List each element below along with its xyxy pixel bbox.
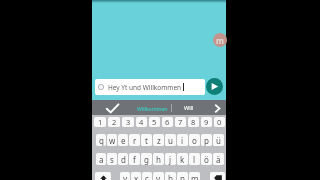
staticText: 1 bbox=[98, 117, 103, 127]
staticText: v bbox=[156, 173, 161, 180]
button[interactable]: c bbox=[142, 172, 152, 180]
button[interactable]: n bbox=[177, 172, 188, 180]
button[interactable]: a bbox=[96, 153, 106, 165]
staticText: ö bbox=[204, 154, 209, 165]
button[interactable]: Willkommen bbox=[133, 100, 172, 116]
button[interactable]: w bbox=[107, 134, 117, 146]
staticText: w bbox=[109, 135, 116, 146]
staticText: n bbox=[180, 173, 185, 180]
staticText: r bbox=[133, 135, 137, 146]
button[interactable]: k bbox=[177, 153, 188, 165]
button[interactable]: ü bbox=[213, 134, 224, 146]
button[interactable]: 0 bbox=[214, 117, 225, 127]
button[interactable]: r bbox=[129, 134, 140, 146]
button[interactable]: 1 bbox=[94, 117, 106, 127]
button[interactable]: i bbox=[177, 134, 188, 146]
staticText: ü bbox=[216, 135, 221, 146]
button[interactable]: p bbox=[201, 134, 212, 146]
staticText: 0 bbox=[217, 117, 222, 127]
button[interactable]: 8 bbox=[188, 117, 199, 127]
staticText: 9 bbox=[204, 117, 209, 127]
staticText: e bbox=[121, 135, 126, 146]
staticText: 6 bbox=[165, 117, 170, 127]
button[interactable]: d bbox=[118, 153, 128, 165]
button[interactable]: l bbox=[189, 153, 200, 165]
button[interactable]: h bbox=[153, 153, 164, 165]
button[interactable]: q bbox=[96, 134, 106, 146]
button[interactable]: Hey Yt und Willkommen bbox=[95, 79, 205, 95]
staticText: Will bbox=[184, 104, 194, 112]
staticText: i bbox=[181, 135, 184, 146]
staticText: q bbox=[99, 135, 104, 146]
button[interactable]: 3 bbox=[122, 117, 134, 127]
button[interactable]: Accept suggestion bbox=[101, 100, 123, 116]
staticText: Willkommen bbox=[137, 105, 168, 112]
staticText: b bbox=[168, 173, 173, 180]
button[interactable]: 5 bbox=[149, 117, 160, 127]
button[interactable]: j bbox=[165, 153, 176, 165]
staticText: k bbox=[180, 154, 185, 165]
staticText: ä bbox=[216, 154, 221, 165]
button[interactable]: ä bbox=[213, 153, 224, 165]
button[interactable]: Backspace bbox=[210, 172, 225, 180]
button[interactable]: z bbox=[153, 134, 164, 146]
staticText: t bbox=[145, 135, 148, 146]
button[interactable]: 7 bbox=[175, 117, 186, 127]
staticText: m bbox=[216, 35, 224, 46]
staticText: c bbox=[145, 173, 149, 180]
staticText: u bbox=[168, 135, 173, 146]
staticText: 2 bbox=[112, 117, 117, 127]
button[interactable]: u bbox=[165, 134, 176, 146]
staticText: Hey Yt und Willkommen bbox=[108, 83, 182, 92]
staticText: d bbox=[121, 154, 126, 165]
button[interactable]: e bbox=[118, 134, 128, 146]
staticText: p bbox=[204, 135, 209, 146]
button[interactable]: b bbox=[165, 172, 176, 180]
button[interactable]: f bbox=[129, 153, 140, 165]
staticText: 7 bbox=[178, 117, 183, 127]
button[interactable]: Shift bbox=[95, 172, 111, 180]
button[interactable]: t bbox=[141, 134, 152, 146]
staticText: f bbox=[133, 154, 136, 165]
staticText: 5 bbox=[152, 117, 157, 127]
button[interactable]: ö bbox=[201, 153, 212, 165]
staticText: z bbox=[157, 135, 161, 146]
button[interactable]: More suggestions bbox=[209, 100, 225, 116]
button[interactable]: Will bbox=[175, 100, 203, 116]
button[interactable]: 2 bbox=[108, 117, 120, 127]
staticText: j bbox=[169, 154, 172, 165]
button[interactable]: m bbox=[189, 172, 200, 180]
staticText: x bbox=[134, 173, 139, 180]
button[interactable]: x bbox=[131, 172, 141, 180]
staticText: a bbox=[99, 154, 104, 165]
button[interactable]: 9 bbox=[201, 117, 212, 127]
button[interactable]: o bbox=[189, 134, 200, 146]
button[interactable]: 4 bbox=[136, 117, 147, 127]
staticText: h bbox=[156, 154, 161, 165]
staticText: o bbox=[192, 135, 197, 146]
staticText: 4 bbox=[139, 117, 144, 127]
staticText: 3 bbox=[126, 117, 131, 127]
staticText: l bbox=[193, 154, 196, 165]
button[interactable]: 6 bbox=[162, 117, 173, 127]
staticText: s bbox=[110, 154, 114, 165]
staticText: g bbox=[144, 154, 149, 165]
button[interactable]: y bbox=[120, 172, 130, 180]
staticText: y bbox=[123, 173, 128, 180]
button[interactable]: g bbox=[141, 153, 152, 165]
staticText: 8 bbox=[191, 117, 196, 127]
staticText: m bbox=[191, 173, 199, 180]
button[interactable]: v bbox=[153, 172, 164, 180]
button[interactable]: s bbox=[107, 153, 117, 165]
button[interactable]: Send message bbox=[206, 78, 223, 95]
